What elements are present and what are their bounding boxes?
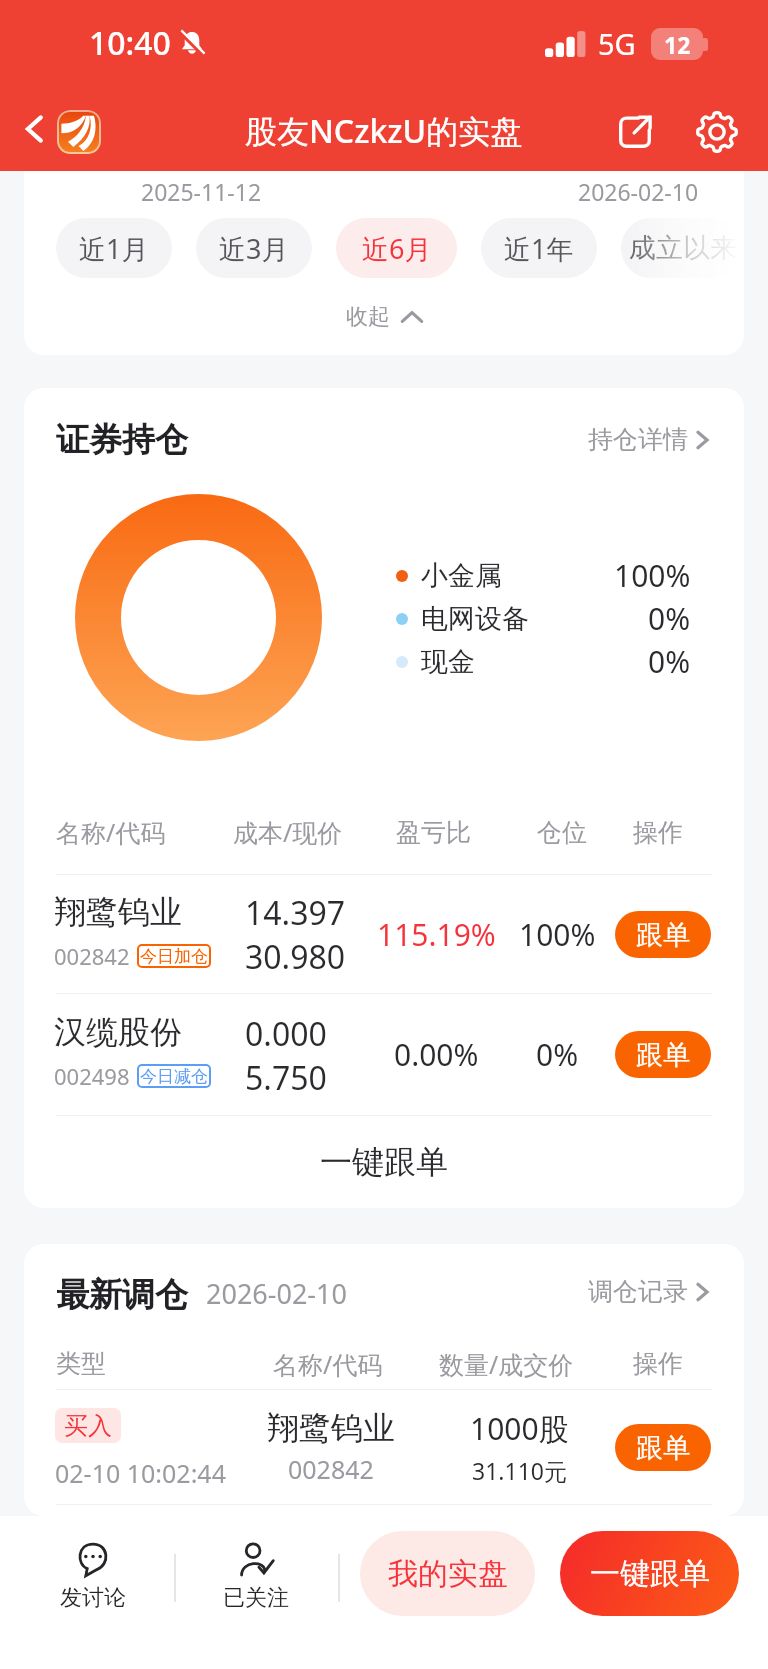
button[interactable]: 近1月 bbox=[56, 218, 172, 278]
staticText: 证券持仓 bbox=[56, 419, 188, 461]
staticText: 2026-02-10 bbox=[578, 176, 699, 207]
staticText: 10:40 bbox=[89, 21, 171, 65]
staticText: 30.980 bbox=[245, 935, 346, 979]
staticText: 2025-11-12 bbox=[141, 176, 262, 207]
staticText: 12 bbox=[664, 29, 691, 60]
staticText: 操作 bbox=[633, 1348, 683, 1379]
button[interactable]: 跟单 bbox=[615, 911, 711, 958]
staticText: 14.397 bbox=[245, 891, 346, 935]
staticText: 5G bbox=[598, 24, 636, 63]
staticText: 0% bbox=[648, 641, 691, 682]
staticText: 002498 bbox=[54, 1061, 130, 1091]
staticText: 0% bbox=[648, 598, 691, 639]
staticText: 02-10 10:02:44 bbox=[55, 1456, 226, 1490]
staticText: 盈亏比 bbox=[396, 817, 471, 848]
staticText: 跟单 bbox=[636, 1038, 690, 1072]
staticText: 今日加仓 bbox=[140, 946, 208, 967]
staticText: 31.110元 bbox=[472, 1455, 567, 1486]
staticText: 100% bbox=[614, 555, 691, 596]
staticText: 我的实盘 bbox=[388, 1555, 508, 1593]
button[interactable]: 一键跟单 bbox=[24, 1116, 744, 1208]
staticText: 近1月 bbox=[79, 230, 149, 267]
staticText: 0.000 bbox=[245, 1012, 327, 1056]
staticText: 买入 bbox=[64, 1411, 112, 1441]
button[interactable]: 近1年 bbox=[481, 218, 597, 278]
button[interactable]: 收起 bbox=[24, 278, 744, 341]
staticText: 现金 bbox=[421, 645, 475, 679]
button[interactable]: 近6月 bbox=[336, 218, 457, 278]
button[interactable]: 成立以来 bbox=[621, 218, 744, 278]
staticText: 一键跟单 bbox=[590, 1555, 710, 1593]
button[interactable]: 调仓记录 bbox=[588, 1276, 709, 1307]
button[interactable]: 跟单 bbox=[615, 1424, 711, 1471]
staticText: 收起 bbox=[346, 303, 390, 331]
button[interactable]: Back bbox=[8, 103, 60, 155]
button[interactable]: Share bbox=[605, 102, 665, 162]
staticText: 跟单 bbox=[636, 918, 690, 952]
staticText: 已关注 bbox=[223, 1584, 289, 1612]
staticText: 002842 bbox=[288, 1452, 374, 1486]
staticText: 翔鹭钨业 bbox=[54, 892, 182, 932]
staticText: 最新调仓 bbox=[56, 1274, 188, 1316]
staticText: 操作 bbox=[633, 817, 683, 848]
staticText: 小金属 bbox=[421, 559, 502, 593]
staticText: 115.19% bbox=[377, 914, 496, 955]
staticText: 电网设备 bbox=[421, 602, 529, 636]
button[interactable]: 近3月 bbox=[196, 218, 312, 278]
button[interactable]: Settings bbox=[687, 102, 747, 162]
staticText: 一键跟单 bbox=[320, 1142, 448, 1182]
button[interactable]: 跟单 bbox=[615, 1031, 711, 1078]
staticText: 成本/现价 bbox=[233, 815, 343, 849]
staticText: 翔鹭钨业 bbox=[267, 1408, 395, 1448]
staticText: 成立以来 bbox=[629, 231, 737, 265]
staticText: 数量/成交价 bbox=[439, 1347, 574, 1381]
staticText: 近1年 bbox=[504, 230, 574, 267]
staticText: 0% bbox=[536, 1034, 579, 1075]
staticText: 0.00% bbox=[394, 1034, 479, 1075]
staticText: 股友NCzkzU的实盘 bbox=[245, 109, 523, 153]
staticText: 跟单 bbox=[636, 1431, 690, 1465]
button[interactable]: 发讨论 bbox=[50, 1536, 135, 1608]
staticText: 仓位 bbox=[537, 817, 587, 848]
staticText: 今日减仓 bbox=[140, 1066, 208, 1087]
button[interactable]: 我的实盘 bbox=[360, 1531, 535, 1616]
staticText: 2026-02-10 bbox=[206, 1275, 347, 1312]
staticText: 5.750 bbox=[245, 1056, 327, 1100]
staticText: 名称/代码 bbox=[56, 815, 166, 849]
button[interactable]: 已关注 bbox=[213, 1536, 298, 1608]
staticText: 名称/代码 bbox=[273, 1347, 383, 1381]
staticText: 近3月 bbox=[219, 230, 289, 267]
button[interactable]: 一键跟单 bbox=[560, 1531, 739, 1616]
staticText: 发讨论 bbox=[60, 1584, 126, 1612]
staticText: 类型 bbox=[56, 1348, 106, 1379]
staticText: 1000股 bbox=[470, 1408, 569, 1449]
staticText: 002842 bbox=[54, 941, 130, 971]
staticText: 调仓记录 bbox=[588, 1276, 688, 1307]
button[interactable]: 持仓详情 bbox=[588, 424, 709, 455]
staticText: 100% bbox=[519, 914, 596, 955]
staticText: 汉缆股份 bbox=[54, 1012, 182, 1052]
staticText: 近6月 bbox=[362, 230, 432, 267]
staticText: 持仓详情 bbox=[588, 424, 688, 455]
